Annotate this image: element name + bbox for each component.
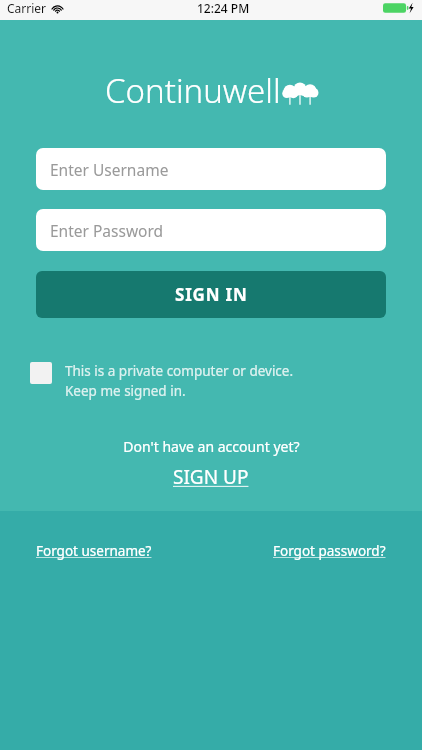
button[interactable]: Forgot username? [36,539,152,563]
button[interactable]: Keep me signed in checkbox [30,362,392,400]
button[interactable]: SIGN IN [36,271,386,318]
staticText: SIGN IN [175,283,248,306]
staticText: Carrier [7,0,47,16]
staticText: 12:24 PM [197,0,250,16]
other: Keep me signed in checkbox [30,362,52,384]
staticText: Forgot username? [36,542,152,560]
staticText: This is a private computer or device. [65,362,294,380]
staticText: Don't have an account yet? [123,437,300,456]
button[interactable]: Enter Username [36,148,386,190]
staticText: Keep me signed in. [65,382,186,400]
staticText: Enter Password [50,220,164,241]
button[interactable]: Enter Password [36,209,386,251]
staticText: Continuwell [105,68,281,113]
staticText: SIGN UP [173,464,249,490]
button[interactable]: Forgot password? [273,539,386,563]
staticText: Enter Username [50,159,169,180]
staticText: Forgot password? [273,542,386,560]
button[interactable]: SIGN UP [167,462,255,492]
